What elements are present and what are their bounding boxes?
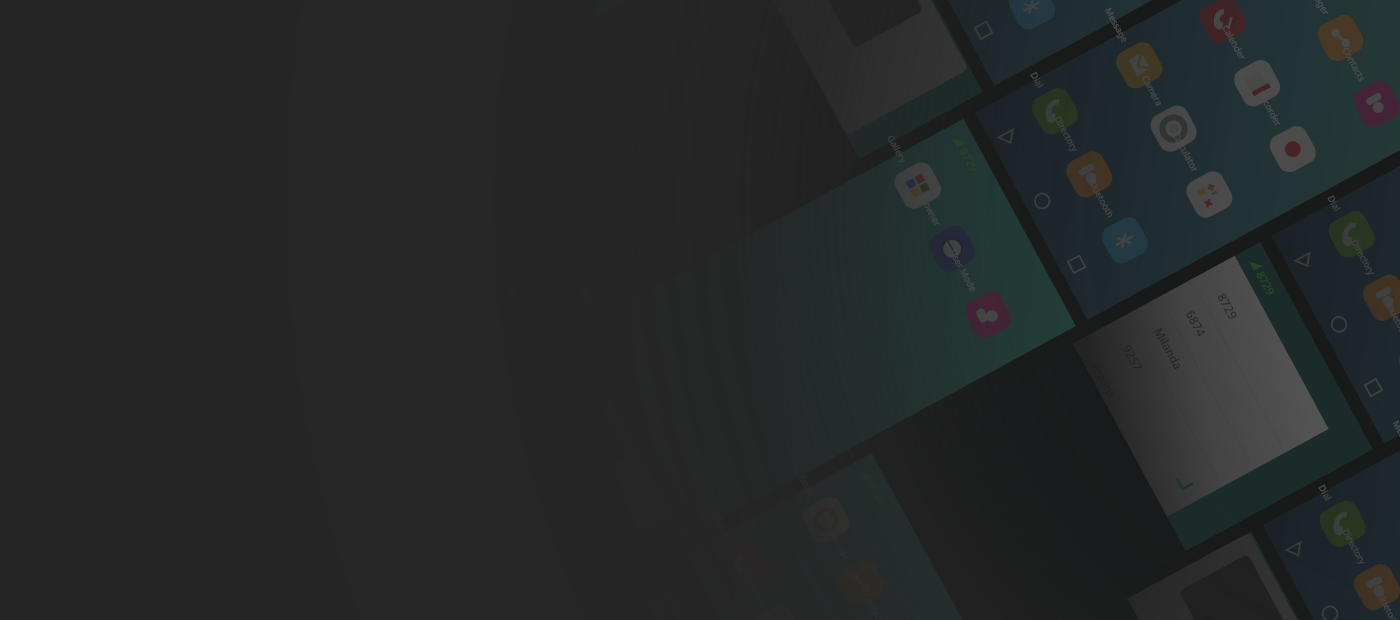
button[interactable]	[0, 0, 1400, 620]
